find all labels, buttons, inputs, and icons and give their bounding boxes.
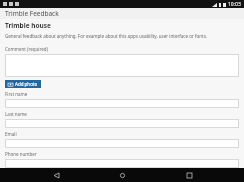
- staticText: 10:03: [228, 1, 241, 8]
- button[interactable]: [5, 159, 239, 168]
- button[interactable]: Home: [111, 168, 133, 182]
- staticText: Comment (required): [5, 46, 48, 52]
- button[interactable]: [5, 54, 239, 77]
- staticText: First name: [5, 91, 28, 97]
- staticText: General feedback about anything. For exa…: [5, 33, 208, 39]
- button[interactable]: Add photo: [5, 80, 41, 88]
- button[interactable]: [5, 99, 239, 108]
- button[interactable]: [5, 139, 239, 148]
- staticText: Trimble Feedback: [5, 9, 59, 18]
- button[interactable]: Recent apps: [178, 168, 200, 182]
- staticText: Email: [5, 131, 17, 137]
- button[interactable]: Back: [45, 168, 67, 182]
- button[interactable]: Trimble Feedback: [0, 8, 244, 19]
- staticText: Phone number: [5, 151, 37, 157]
- staticText: Add photo: [15, 81, 38, 87]
- staticText: Trimble house: [5, 21, 51, 30]
- staticText: Last name: [5, 111, 27, 117]
- button[interactable]: [5, 119, 239, 128]
